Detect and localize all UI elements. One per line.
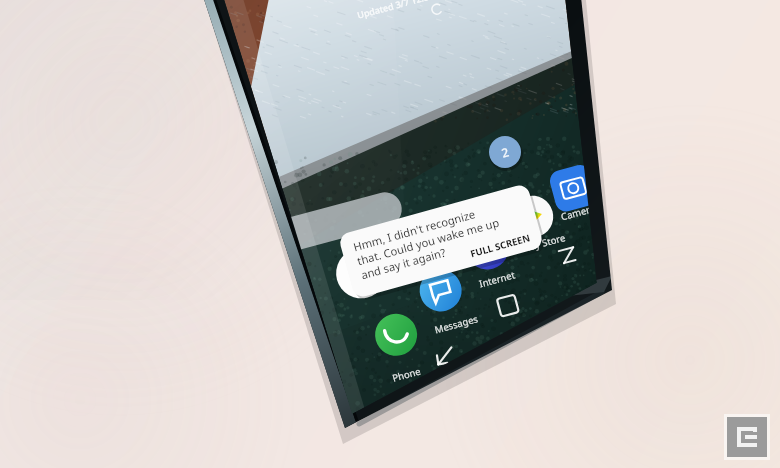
other: Samsung Galaxy S8 home screen bbox=[0, 0, 780, 468]
